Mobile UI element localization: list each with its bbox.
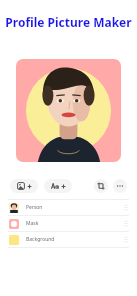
button[interactable]: Transform: [94, 179, 108, 193]
staticText: Profile Picture Maker: [5, 14, 132, 30]
button[interactable]: Add image: [10, 179, 38, 193]
button[interactable]: [16, 59, 121, 162]
button[interactable]: More options: [113, 179, 127, 193]
button[interactable]: Add text: [44, 179, 72, 193]
button[interactable]: Background: [9, 232, 128, 247]
staticText: Person: [26, 204, 43, 211]
staticText: Background: [26, 236, 55, 243]
button[interactable]: Person: [9, 200, 128, 215]
staticText: Mask: [26, 220, 39, 227]
button[interactable]: Mask: [9, 216, 128, 231]
